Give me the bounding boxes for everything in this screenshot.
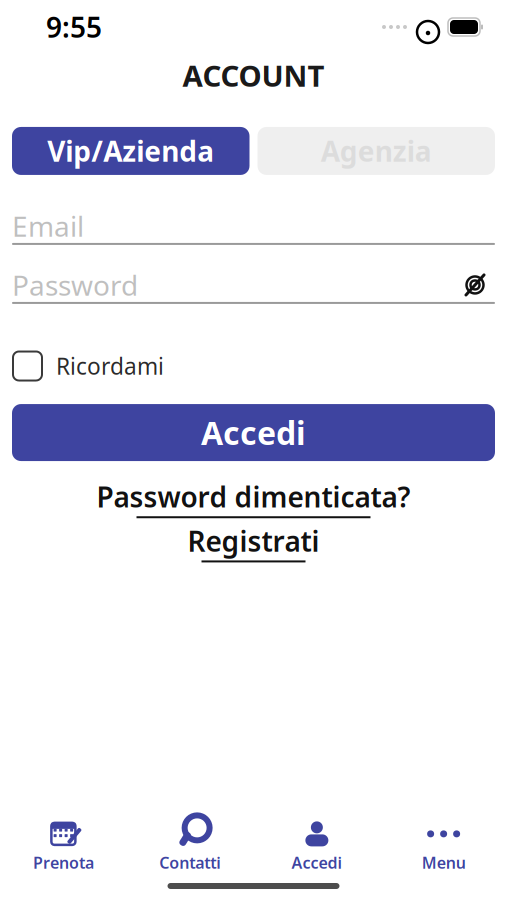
button[interactable]: Registrati [187, 522, 319, 562]
button[interactable]: Agenzia [257, 127, 495, 175]
button[interactable]: Vip/Azienda [12, 127, 249, 175]
staticText: Vip/Azienda [47, 132, 214, 170]
button[interactable]: Ricordami [0, 304, 507, 381]
staticText: Prenota [33, 852, 94, 873]
staticText: Ricordami [56, 351, 164, 381]
button[interactable]: Menu [380, 819, 507, 875]
staticText: Accedi [291, 852, 342, 873]
staticText: Accedi [201, 411, 306, 454]
staticText: Password dimenticata? [96, 478, 410, 515]
button[interactable]: Password dimenticata? [96, 478, 410, 518]
staticText: Menu [422, 852, 466, 873]
staticText: Email [12, 207, 84, 245]
button[interactable]: Accedi [0, 381, 507, 461]
button[interactable]: Accedi [253, 819, 380, 875]
staticText: Agenzia [321, 132, 432, 170]
staticText: 9:55 [46, 8, 102, 46]
button[interactable]: Contatti [127, 819, 254, 875]
staticText: Password [12, 266, 138, 304]
staticText: Registrati [187, 522, 319, 559]
staticText: Contatti [159, 852, 221, 873]
button[interactable]: Show password [455, 270, 495, 300]
staticText: ACCOUNT [182, 56, 324, 95]
button[interactable]: Prenota [0, 819, 127, 875]
